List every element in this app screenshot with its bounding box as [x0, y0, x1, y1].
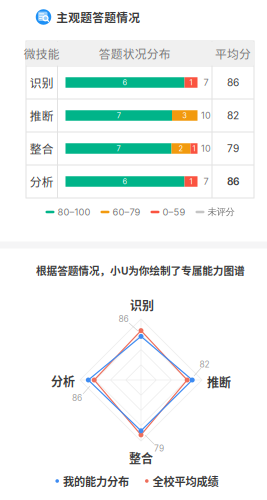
staticText: 86 — [118, 314, 128, 324]
staticText: 2 — [178, 144, 183, 153]
staticText: 7 — [116, 144, 120, 153]
staticText: 82 — [199, 359, 209, 370]
staticText: 识别 — [30, 74, 54, 91]
staticText: 79 — [227, 142, 239, 155]
staticText: 7 — [117, 111, 121, 120]
button[interactable]: 主观题答题情况 — [36, 8, 140, 25]
button[interactable]: 我的能力分布 — [55, 473, 129, 489]
staticText: 80–100 — [57, 206, 90, 218]
staticText: 79 — [154, 443, 164, 454]
staticText: 识别 — [130, 296, 154, 314]
staticText: 1 — [189, 78, 192, 87]
staticText: 整合 — [129, 449, 153, 467]
staticText: 平均分 — [215, 45, 251, 62]
staticText: 10 — [201, 143, 211, 154]
staticText: 6 — [122, 177, 127, 186]
staticText: 86 — [227, 76, 239, 89]
staticText: 86 — [72, 393, 82, 403]
staticText: 86 — [227, 175, 239, 188]
button[interactable]: 全校平均成绩 — [145, 473, 219, 489]
staticText: 未评分 — [207, 206, 234, 218]
staticText: 10 — [201, 110, 211, 121]
staticText: 60–79 — [112, 206, 140, 218]
staticText: 推断 — [207, 373, 231, 391]
staticText: 7 — [203, 176, 208, 187]
staticText: 7 — [203, 77, 208, 88]
staticText: 0–59 — [162, 206, 185, 218]
staticText: 整合 — [30, 140, 54, 157]
staticText: 6 — [122, 78, 127, 87]
staticText: 推断 — [30, 107, 54, 124]
staticText: 82 — [227, 109, 239, 122]
staticText: 答题状况分布 — [99, 45, 171, 62]
staticText: 根据答题情况，小U为你绘制了专属能力图谱 — [36, 262, 245, 278]
staticText: 1 — [192, 144, 195, 153]
staticText: 3 — [182, 111, 187, 120]
staticText: 1 — [189, 177, 192, 186]
staticText: 分析 — [30, 173, 54, 190]
staticText: 微技能 — [24, 45, 60, 62]
staticText: 全校平均成绩 — [153, 473, 219, 489]
staticText: 分析 — [51, 372, 75, 390]
staticText: 主观题答题情况 — [56, 8, 140, 25]
staticText: 我的能力分布 — [63, 473, 129, 489]
